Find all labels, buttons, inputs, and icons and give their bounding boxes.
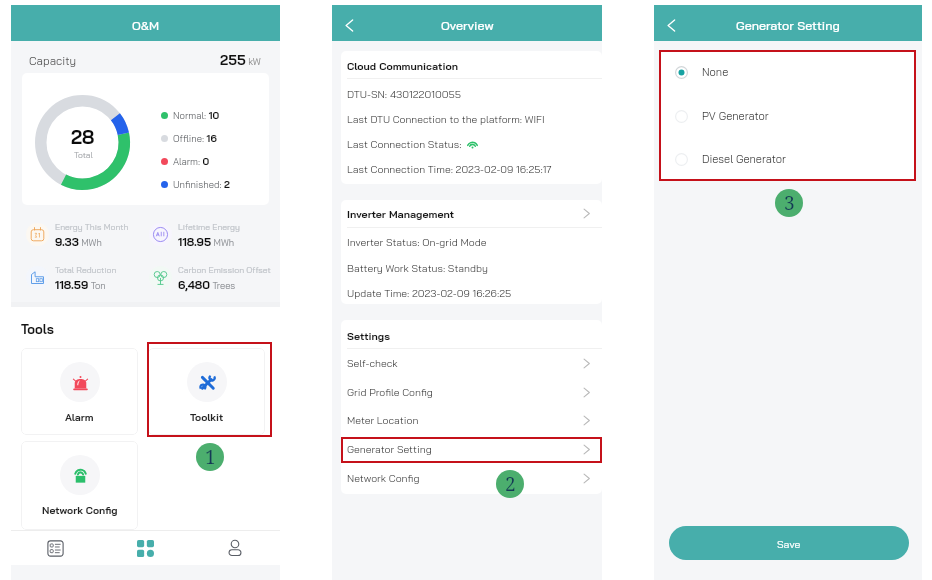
staticText: Last DTU Connection to the platform: WIF… <box>347 113 545 126</box>
button[interactable]: List <box>11 531 100 565</box>
staticText: Last Connection Status: <box>347 138 465 151</box>
staticText: Generator Setting <box>736 17 840 33</box>
button[interactable]: Toolkit <box>148 348 265 435</box>
staticText: Inverter Management <box>347 207 455 220</box>
staticText: Capacity <box>29 53 77 67</box>
staticText: Toolkit <box>190 411 224 424</box>
staticText: Settings <box>347 329 390 342</box>
staticText: 6,480 Trees <box>178 277 236 291</box>
button[interactable]: Network Config <box>21 441 138 530</box>
button[interactable]: Grid Profile Config <box>347 381 592 404</box>
staticText: PV Generator <box>702 109 769 123</box>
button[interactable]: Diesel Generator <box>675 146 904 172</box>
staticText: 1 <box>205 444 216 470</box>
staticText: Update Time: 2023-02-09 16:26:25 <box>347 287 512 300</box>
staticText: Total <box>74 149 93 160</box>
button[interactable]: Save <box>669 526 909 560</box>
staticText: 118.95 MWh <box>178 234 235 248</box>
staticText: Network Config <box>42 504 118 517</box>
staticText: Alarm <box>65 411 94 424</box>
staticText: Battery Work Status: Standby <box>347 262 488 275</box>
button[interactable]: Carbon Emission Offset <box>149 260 271 294</box>
staticText: 28 <box>71 125 95 149</box>
staticText: 3 <box>784 190 795 216</box>
staticText: Alarm: 0 <box>173 155 210 168</box>
button[interactable]: Back <box>658 5 684 41</box>
staticText: Energy This Month <box>55 221 129 232</box>
button[interactable]: Generator Setting <box>347 438 592 461</box>
staticText: Offline: 16 <box>173 132 217 145</box>
staticText: Diesel Generator <box>702 152 786 166</box>
button[interactable]: Network Config <box>347 467 592 490</box>
staticText: Unfinished: 2 <box>173 178 230 191</box>
button[interactable]: Profile <box>190 531 280 565</box>
staticText: Generator Setting <box>347 443 432 456</box>
button[interactable]: Energy This Month <box>26 217 129 251</box>
staticText: Network Config <box>347 472 420 485</box>
staticText: Grid Profile Config <box>347 386 433 399</box>
staticText: Normal: 10 <box>173 109 220 122</box>
button[interactable]: None <box>675 59 904 85</box>
button[interactable]: Dashboard <box>100 531 190 565</box>
button[interactable]: Self-check <box>347 352 592 375</box>
staticText: Meter Location <box>347 414 419 427</box>
staticText: Self-check <box>347 357 398 370</box>
staticText: Cloud Communication <box>347 59 458 72</box>
staticText: Save <box>777 537 801 550</box>
staticText: Last Connection Time: 2023-02-09 16:25:1… <box>347 163 552 176</box>
button[interactable]: Inverter Management <box>347 200 592 227</box>
staticText: Total Reduction <box>55 264 117 275</box>
staticText: Lifetime Energy <box>178 221 240 232</box>
button[interactable]: PV Generator <box>675 103 904 129</box>
staticText: DTU-SN: 430122010055 <box>347 87 462 100</box>
staticText: 2 <box>505 471 516 497</box>
button[interactable]: Alarm <box>21 348 138 435</box>
staticText: Carbon Emission Offset <box>178 264 271 275</box>
button[interactable]: Lifetime Energy <box>149 217 240 251</box>
button[interactable]: Back <box>336 5 362 41</box>
button[interactable]: Meter Location <box>347 409 592 432</box>
staticText: O&M <box>132 17 160 33</box>
staticText: 118.59 Ton <box>55 277 106 291</box>
staticText: 255 kW <box>220 51 261 69</box>
staticText: Overview <box>441 17 494 33</box>
button[interactable]: Total Reduction <box>26 260 117 294</box>
staticText: Inverter Status: On-grid Mode <box>347 236 487 249</box>
staticText: Tools <box>21 321 54 337</box>
staticText: 9.33 MWh <box>55 234 102 248</box>
staticText: None <box>702 65 729 79</box>
